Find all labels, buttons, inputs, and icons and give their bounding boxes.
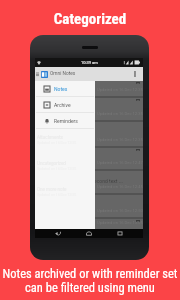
staticText: Updated on 16 Dec 12:47 [97, 160, 143, 165]
staticText: Attachments [37, 135, 63, 140]
staticText: Omni Notes [50, 71, 76, 77]
staticText: Updated on 16 Dec 13:05 [97, 220, 143, 225]
staticText: Uncategorized [37, 161, 66, 166]
staticText: Archive [54, 102, 71, 108]
staticText: Updated on 16 Dec 12:50 [97, 208, 143, 213]
button[interactable]: Updated on 16 Dec 12:50 [35, 195, 143, 219]
button[interactable]: Updated on 16 Dec 12:35 [35, 98, 143, 122]
staticText: One more note [37, 187, 67, 192]
staticText: 10:39 am [81, 60, 98, 65]
button[interactable]: Updated on 16 Dec 12:35 [35, 81, 143, 98]
button[interactable]: Back [50, 229, 66, 238]
button[interactable]: Home [81, 229, 97, 238]
staticText: Updated on 16 Dec 12:45 [97, 184, 143, 189]
staticText: Updated on 16 Dec 12:35 [97, 111, 143, 116]
button[interactable]: Reminders [35, 113, 95, 129]
button[interactable]: Second text ... [35, 171, 143, 195]
button[interactable]: Recent apps [112, 229, 128, 238]
button[interactable]: Updated on 16 Dec 12:47 [35, 148, 143, 171]
button[interactable]: Updated on 16 Dec 12:35 [35, 122, 143, 148]
button[interactable]: Updated on 16 Dec 13:05 [35, 219, 143, 229]
staticText: Categorized [0, 10, 180, 28]
button[interactable]: Open navigation drawer [36, 70, 39, 78]
button[interactable]: Archive [35, 97, 95, 113]
staticText: Notes [54, 86, 68, 92]
staticText: Updated on 16 Dec 12:35 [97, 137, 143, 142]
staticText: Second text ... [91, 178, 123, 184]
staticText: Notes archived or with reminder set can … [0, 266, 180, 295]
staticText: Updated on 16 Dec 12:35 [97, 87, 143, 92]
staticText: Reminders [54, 118, 78, 124]
button[interactable]: Notes [35, 81, 95, 97]
